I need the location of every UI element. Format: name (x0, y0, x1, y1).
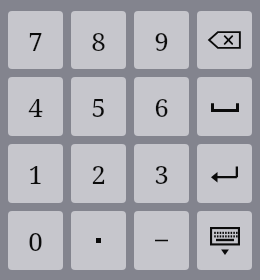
button[interactable]: Period (71, 211, 126, 270)
button[interactable]: 0 (8, 211, 63, 270)
staticText: 6 (154, 89, 169, 124)
button[interactable]: 5 (71, 77, 126, 136)
button[interactable]: 8 (71, 11, 126, 69)
staticText: 4 (28, 89, 43, 124)
button[interactable]: Enter (197, 144, 252, 203)
button[interactable]: 9 (134, 11, 189, 69)
staticText: 8 (91, 23, 106, 58)
staticText: 1 (28, 156, 43, 191)
staticText: 3 (154, 156, 169, 191)
staticText: 0 (28, 223, 43, 258)
button[interactable]: 6 (134, 77, 189, 136)
staticText: 2 (91, 156, 106, 191)
button[interactable]: 4 (8, 77, 63, 136)
button[interactable]: 3 (134, 144, 189, 203)
button[interactable]: 7 (8, 11, 63, 69)
button[interactable]: Hide keyboard (197, 211, 252, 270)
staticText: 7 (28, 23, 43, 58)
staticText: 5 (91, 89, 106, 124)
button[interactable]: 2 (71, 144, 126, 203)
staticText: 9 (154, 23, 169, 58)
button[interactable]: Backspace (197, 11, 252, 69)
button[interactable]: 1 (8, 144, 63, 203)
button[interactable]: Dash (134, 211, 189, 270)
button[interactable]: Space (197, 77, 252, 136)
